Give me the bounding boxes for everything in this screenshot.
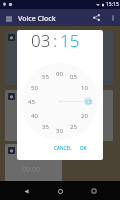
staticText: 00: [56, 70, 63, 78]
staticText: 03: [31, 30, 51, 52]
staticText: 30: [56, 127, 63, 135]
button[interactable]: Open navigation drawer: [2, 12, 15, 25]
button[interactable]: Back: [18, 183, 34, 199]
button[interactable]: More options: [106, 11, 119, 24]
button[interactable]: OK: [78, 143, 89, 153]
staticText: 15:15: [106, 1, 119, 8]
staticText: 15: [85, 98, 92, 106]
staticText: 50: [31, 84, 38, 92]
button[interactable]: 15: [60, 30, 80, 52]
staticText: 25: [70, 123, 77, 131]
staticText: Voice Clock: [18, 14, 56, 24]
staticText: 10: [81, 84, 88, 92]
staticText: CANCEL: [54, 145, 72, 151]
staticText: 08:15: [22, 111, 40, 121]
staticText: 45: [28, 98, 35, 106]
button[interactable]: 07:30: [5, 31, 113, 85]
staticText: OK: [80, 145, 87, 151]
button[interactable]: CANCEL: [52, 143, 74, 153]
button[interactable]: 09:00: [5, 144, 62, 184]
staticText: :: [53, 30, 58, 52]
staticText: 55: [42, 73, 49, 81]
button[interactable]: 03: [31, 30, 51, 52]
button[interactable]: Share: [90, 11, 103, 24]
staticText: 20: [81, 112, 88, 120]
button[interactable]: Recent apps: [86, 183, 102, 199]
staticText: 35: [42, 123, 49, 131]
staticText: 15: [60, 30, 80, 52]
staticText: 05: [70, 73, 77, 81]
button[interactable]: Home: [52, 183, 68, 199]
button[interactable]: 08:15: [5, 90, 113, 141]
staticText: 40: [31, 112, 38, 120]
staticText: 09:00: [22, 165, 40, 175]
